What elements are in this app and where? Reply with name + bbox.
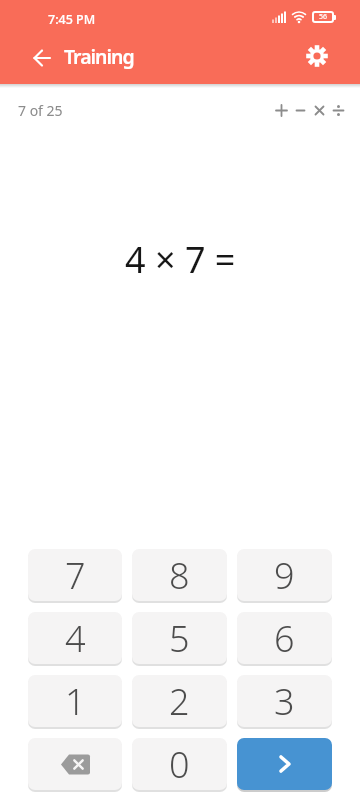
staticText: 3	[274, 677, 295, 726]
staticText: 5	[169, 614, 190, 663]
staticText: 6	[274, 614, 295, 663]
button[interactable]: 9	[237, 549, 332, 601]
button[interactable]	[294, 104, 307, 117]
staticText: 2	[169, 677, 190, 726]
staticText: 7 of 25	[18, 101, 63, 120]
staticText: Training	[64, 43, 134, 70]
button[interactable]	[28, 738, 122, 790]
staticText: 8	[169, 551, 190, 600]
button[interactable]	[18, 32, 66, 80]
staticText: 4 × 7 =	[125, 235, 236, 284]
button[interactable]: 8	[132, 549, 227, 601]
button[interactable]: 7	[28, 549, 122, 601]
button[interactable]	[275, 104, 288, 117]
staticText: 1	[65, 677, 86, 726]
button[interactable]: 0	[132, 738, 227, 790]
staticText: 7:45 PM	[48, 11, 96, 28]
button[interactable]	[332, 104, 345, 117]
staticText: 0	[169, 740, 190, 789]
button[interactable]: 3	[237, 675, 332, 727]
button[interactable]: 6	[237, 612, 332, 664]
button[interactable]: 4	[28, 612, 122, 664]
button[interactable]	[295, 34, 339, 78]
button[interactable]: 5	[132, 612, 227, 664]
staticText: 7	[65, 551, 86, 600]
staticText: 56	[319, 12, 328, 22]
button[interactable]: 2	[132, 675, 227, 727]
button[interactable]	[313, 104, 326, 117]
button[interactable]: 1	[28, 675, 122, 727]
staticText: 4	[65, 614, 86, 663]
button[interactable]	[237, 738, 332, 790]
staticText: 9	[274, 551, 295, 600]
